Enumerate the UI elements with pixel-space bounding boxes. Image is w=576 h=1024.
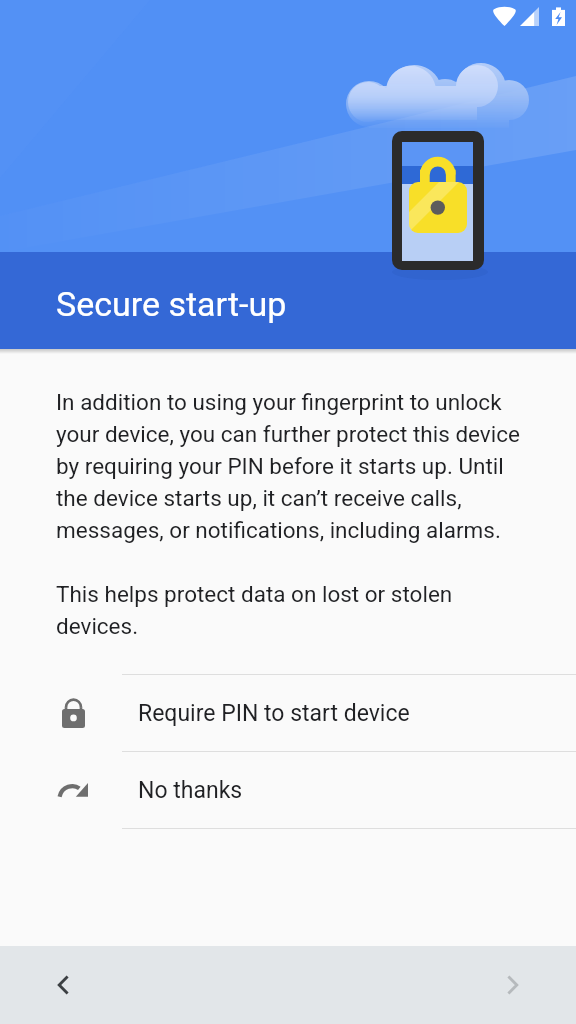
button[interactable]: No thanks [0, 751, 576, 828]
button[interactable]: Next [488, 961, 536, 1009]
button[interactable]: Back [40, 961, 88, 1009]
staticText: Secure start-up [56, 284, 287, 324]
staticText: In addition to using your fingerprint to… [56, 389, 526, 544]
staticText: This helps protect data on lost or stole… [56, 581, 526, 640]
staticText: Require PIN to start device [138, 700, 410, 727]
button[interactable]: Require PIN to start device [0, 674, 576, 751]
staticText: No thanks [138, 777, 243, 804]
